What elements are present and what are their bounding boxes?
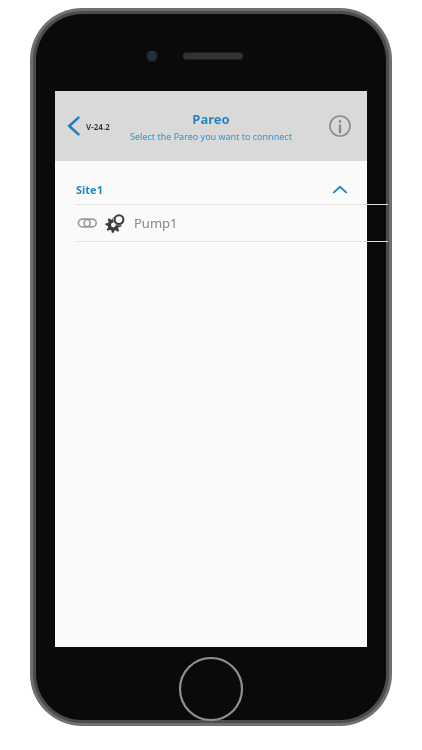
button[interactable]: Site1 [55,174,367,204]
button[interactable]: Information [325,111,355,141]
staticText: Pareo [192,110,230,128]
button[interactable]: V-24.2 [65,109,112,143]
staticText: V-24.2 [86,121,110,132]
staticText: Pump1 [134,214,178,232]
staticText: Select the Pareo you want to connnect [130,130,292,142]
button[interactable]: Pump1 [55,205,367,241]
staticText: Site1 [76,182,103,197]
